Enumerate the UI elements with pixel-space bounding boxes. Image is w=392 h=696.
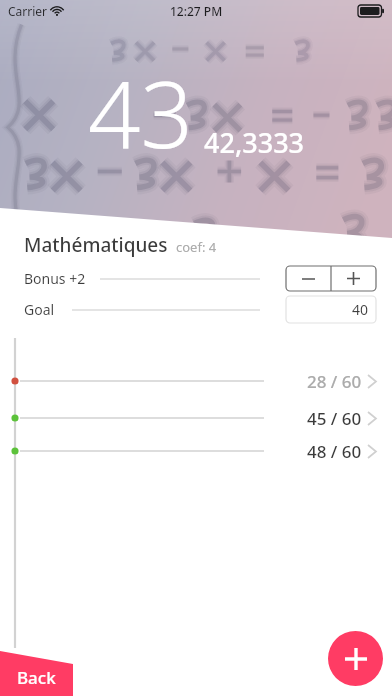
staticText: 48 / 60 (307, 440, 362, 463)
button[interactable]: 40 (286, 296, 376, 323)
staticText: 28 / 60 (307, 370, 362, 393)
staticText: Mathématiques (24, 232, 168, 258)
button[interactable]: 28 / 60 (0, 366, 392, 396)
staticText: Goal (24, 300, 55, 319)
button[interactable]: Decrease bonus (286, 266, 331, 291)
staticText: Bonus +2 (24, 269, 86, 288)
staticText: 45 / 60 (307, 407, 362, 430)
staticText: Carrier (8, 3, 48, 19)
button[interactable]: Back (0, 648, 73, 696)
button[interactable]: 45 / 60 (0, 403, 392, 433)
button[interactable]: 48 / 60 (0, 436, 392, 466)
staticText: 42,3333 (204, 124, 305, 161)
staticText: 43 (88, 50, 194, 175)
staticText: coef: 4 (176, 238, 217, 256)
staticText: Back (17, 666, 56, 689)
staticText: 40 (351, 300, 368, 319)
button[interactable]: Add grade (328, 631, 383, 686)
staticText: 12:27 PM (170, 3, 223, 19)
button[interactable]: Increase bonus (331, 266, 376, 291)
